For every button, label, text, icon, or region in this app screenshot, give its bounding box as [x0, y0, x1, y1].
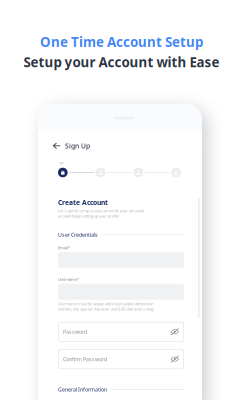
- staticText: Sign Up: [65, 141, 90, 150]
- staticText: Email: [58, 245, 68, 250]
- staticText: Username: [58, 277, 77, 282]
- staticText: Create Account: [58, 198, 108, 207]
- staticText: STEP 1: [59, 161, 67, 165]
- staticText: Let's get all set up so you can verify y…: [58, 208, 144, 219]
- staticText: Username must be unique and must contain…: [58, 301, 154, 312]
- staticText: *: [68, 245, 70, 250]
- button[interactable]: Password: [58, 322, 184, 342]
- staticText: Setup your Account with Ease: [23, 53, 219, 71]
- button[interactable]: Confirm Password: [58, 349, 184, 369]
- staticText: Confirm Password: [63, 356, 107, 363]
- staticText: One Time Account Setup: [40, 33, 203, 51]
- staticText: General Information: [58, 386, 107, 393]
- staticText: *: [77, 277, 79, 282]
- button[interactable]: Sign Up: [52, 138, 142, 154]
- staticText: User Credentials: [58, 231, 98, 238]
- staticText: Password: [63, 328, 87, 335]
